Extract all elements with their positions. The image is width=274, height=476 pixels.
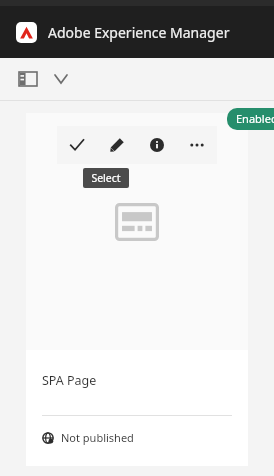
button[interactable]: More actions [177, 126, 217, 164]
staticText: Enabled [236, 111, 274, 126]
staticText: Adobe Experience Manager [48, 23, 230, 42]
button[interactable]: Info [137, 126, 177, 164]
button[interactable]: Adobe logo [16, 22, 37, 43]
button[interactable]: Rail toggle [14, 65, 42, 93]
staticText: Select [91, 171, 121, 185]
button[interactable]: Edit [97, 126, 137, 164]
button[interactable]: Enabled [227, 108, 274, 130]
button[interactable]: Select [57, 126, 97, 164]
button[interactable]: SPA Page [26, 113, 248, 466]
button[interactable]: More options [48, 66, 74, 92]
staticText: SPA Page [42, 372, 97, 389]
staticText: Not published [61, 430, 134, 445]
